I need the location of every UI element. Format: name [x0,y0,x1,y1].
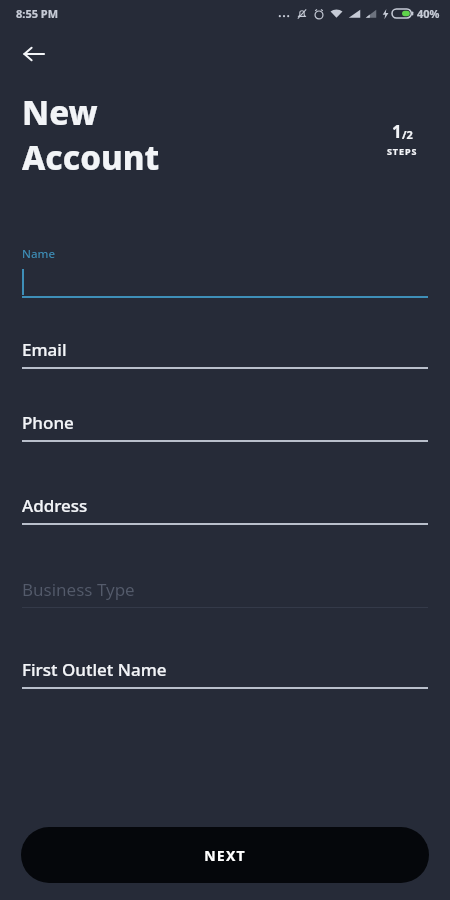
button[interactable]: First Outlet Name [22,658,428,689]
button[interactable]: NEXT [21,827,429,883]
button[interactable]: Back [12,32,56,76]
staticText: STEPS [387,145,418,157]
button[interactable]: Email [22,338,428,369]
button[interactable]: Phone [22,411,428,442]
staticText: 8:55 PM [16,6,59,21]
staticText: Address [22,494,88,517]
button[interactable]: Address [22,494,428,525]
staticText: 1 [392,120,402,143]
staticText: New [22,90,98,135]
button[interactable]: Name [22,246,428,298]
staticText: /2 [402,127,413,142]
button[interactable]: Business Type [22,578,428,608]
staticText: Account [22,135,160,180]
staticText: First Outlet Name [22,658,167,681]
staticText: NEXT [204,846,246,865]
staticText: Business Type [22,578,135,601]
staticText: Name [22,246,55,262]
staticText: Email [22,338,67,361]
staticText: Phone [22,411,74,434]
staticText: 40% [417,6,440,21]
